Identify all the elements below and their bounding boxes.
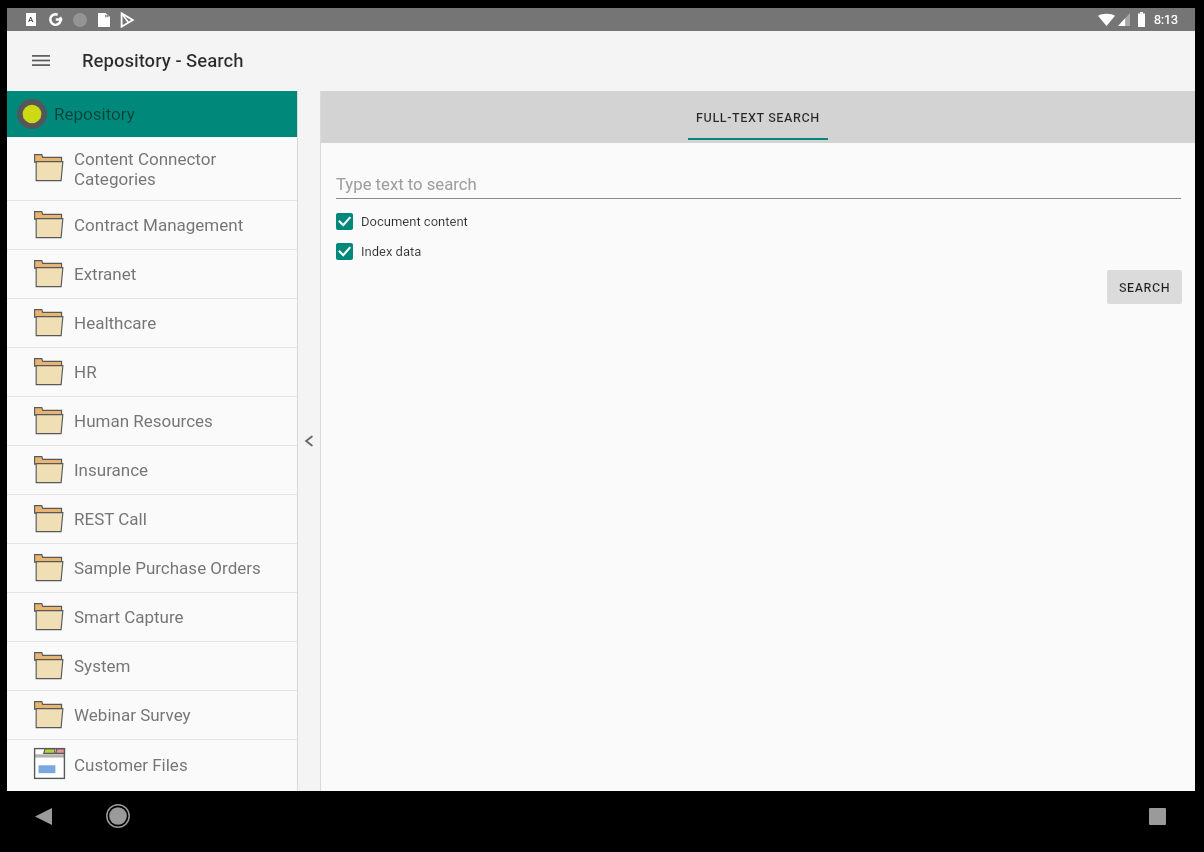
- button[interactable]: Open navigation menu: [17, 36, 65, 84]
- staticText: Webinar Survey: [74, 705, 191, 725]
- staticText: A: [28, 15, 34, 24]
- staticText: 8:13: [1154, 12, 1179, 27]
- button[interactable]: Repository: [7, 91, 297, 137]
- staticText: Content Connector Categories: [74, 149, 217, 189]
- button[interactable]: Human Resources: [7, 397, 297, 445]
- button[interactable]: System: [7, 642, 297, 690]
- staticText: Repository: [54, 104, 135, 124]
- staticText: Sample Purchase Orders: [74, 558, 261, 578]
- staticText: Smart Capture: [74, 607, 184, 627]
- staticText: Customer Files: [74, 755, 188, 775]
- staticText: SEARCH: [1119, 280, 1171, 295]
- button[interactable]: HR: [7, 348, 297, 396]
- staticText: HR: [74, 362, 97, 382]
- staticText: Contract Management: [74, 215, 244, 235]
- staticText: Repository - Search: [82, 50, 244, 72]
- button[interactable]: Customer Files: [7, 740, 297, 789]
- button[interactable]: Extranet: [7, 250, 297, 298]
- button[interactable]: Back: [21, 794, 65, 838]
- staticText: Extranet: [74, 264, 137, 284]
- staticText: System: [74, 656, 131, 676]
- staticText: Document content: [361, 214, 468, 229]
- button[interactable]: SEARCH: [1107, 270, 1182, 304]
- staticText: Healthcare: [74, 313, 157, 333]
- staticText: FULL-TEXT SEARCH: [696, 110, 820, 125]
- button[interactable]: REST Call: [7, 495, 297, 543]
- button[interactable]: Home: [96, 794, 140, 838]
- button[interactable]: Insurance: [7, 446, 297, 494]
- button[interactable]: Webinar Survey: [7, 691, 297, 739]
- button[interactable]: Smart Capture: [7, 593, 297, 641]
- button[interactable]: Index data: [336, 243, 422, 260]
- staticText: Insurance: [74, 460, 149, 480]
- staticText: Human Resources: [74, 411, 213, 431]
- button[interactable]: FULL-TEXT SEARCH: [688, 91, 828, 143]
- button[interactable]: Document content: [336, 213, 468, 230]
- button[interactable]: Collapse panel: [301, 433, 317, 449]
- button[interactable]: Sample Purchase Orders: [7, 544, 297, 592]
- staticText: REST Call: [74, 509, 147, 529]
- button[interactable]: Contract Management: [7, 201, 297, 249]
- button[interactable]: Healthcare: [7, 299, 297, 347]
- button[interactable]: Recent apps: [1135, 794, 1179, 838]
- staticText: Index data: [361, 244, 422, 259]
- button[interactable]: Content Connector Categories: [7, 137, 297, 200]
- staticText: Type text to search: [336, 175, 477, 195]
